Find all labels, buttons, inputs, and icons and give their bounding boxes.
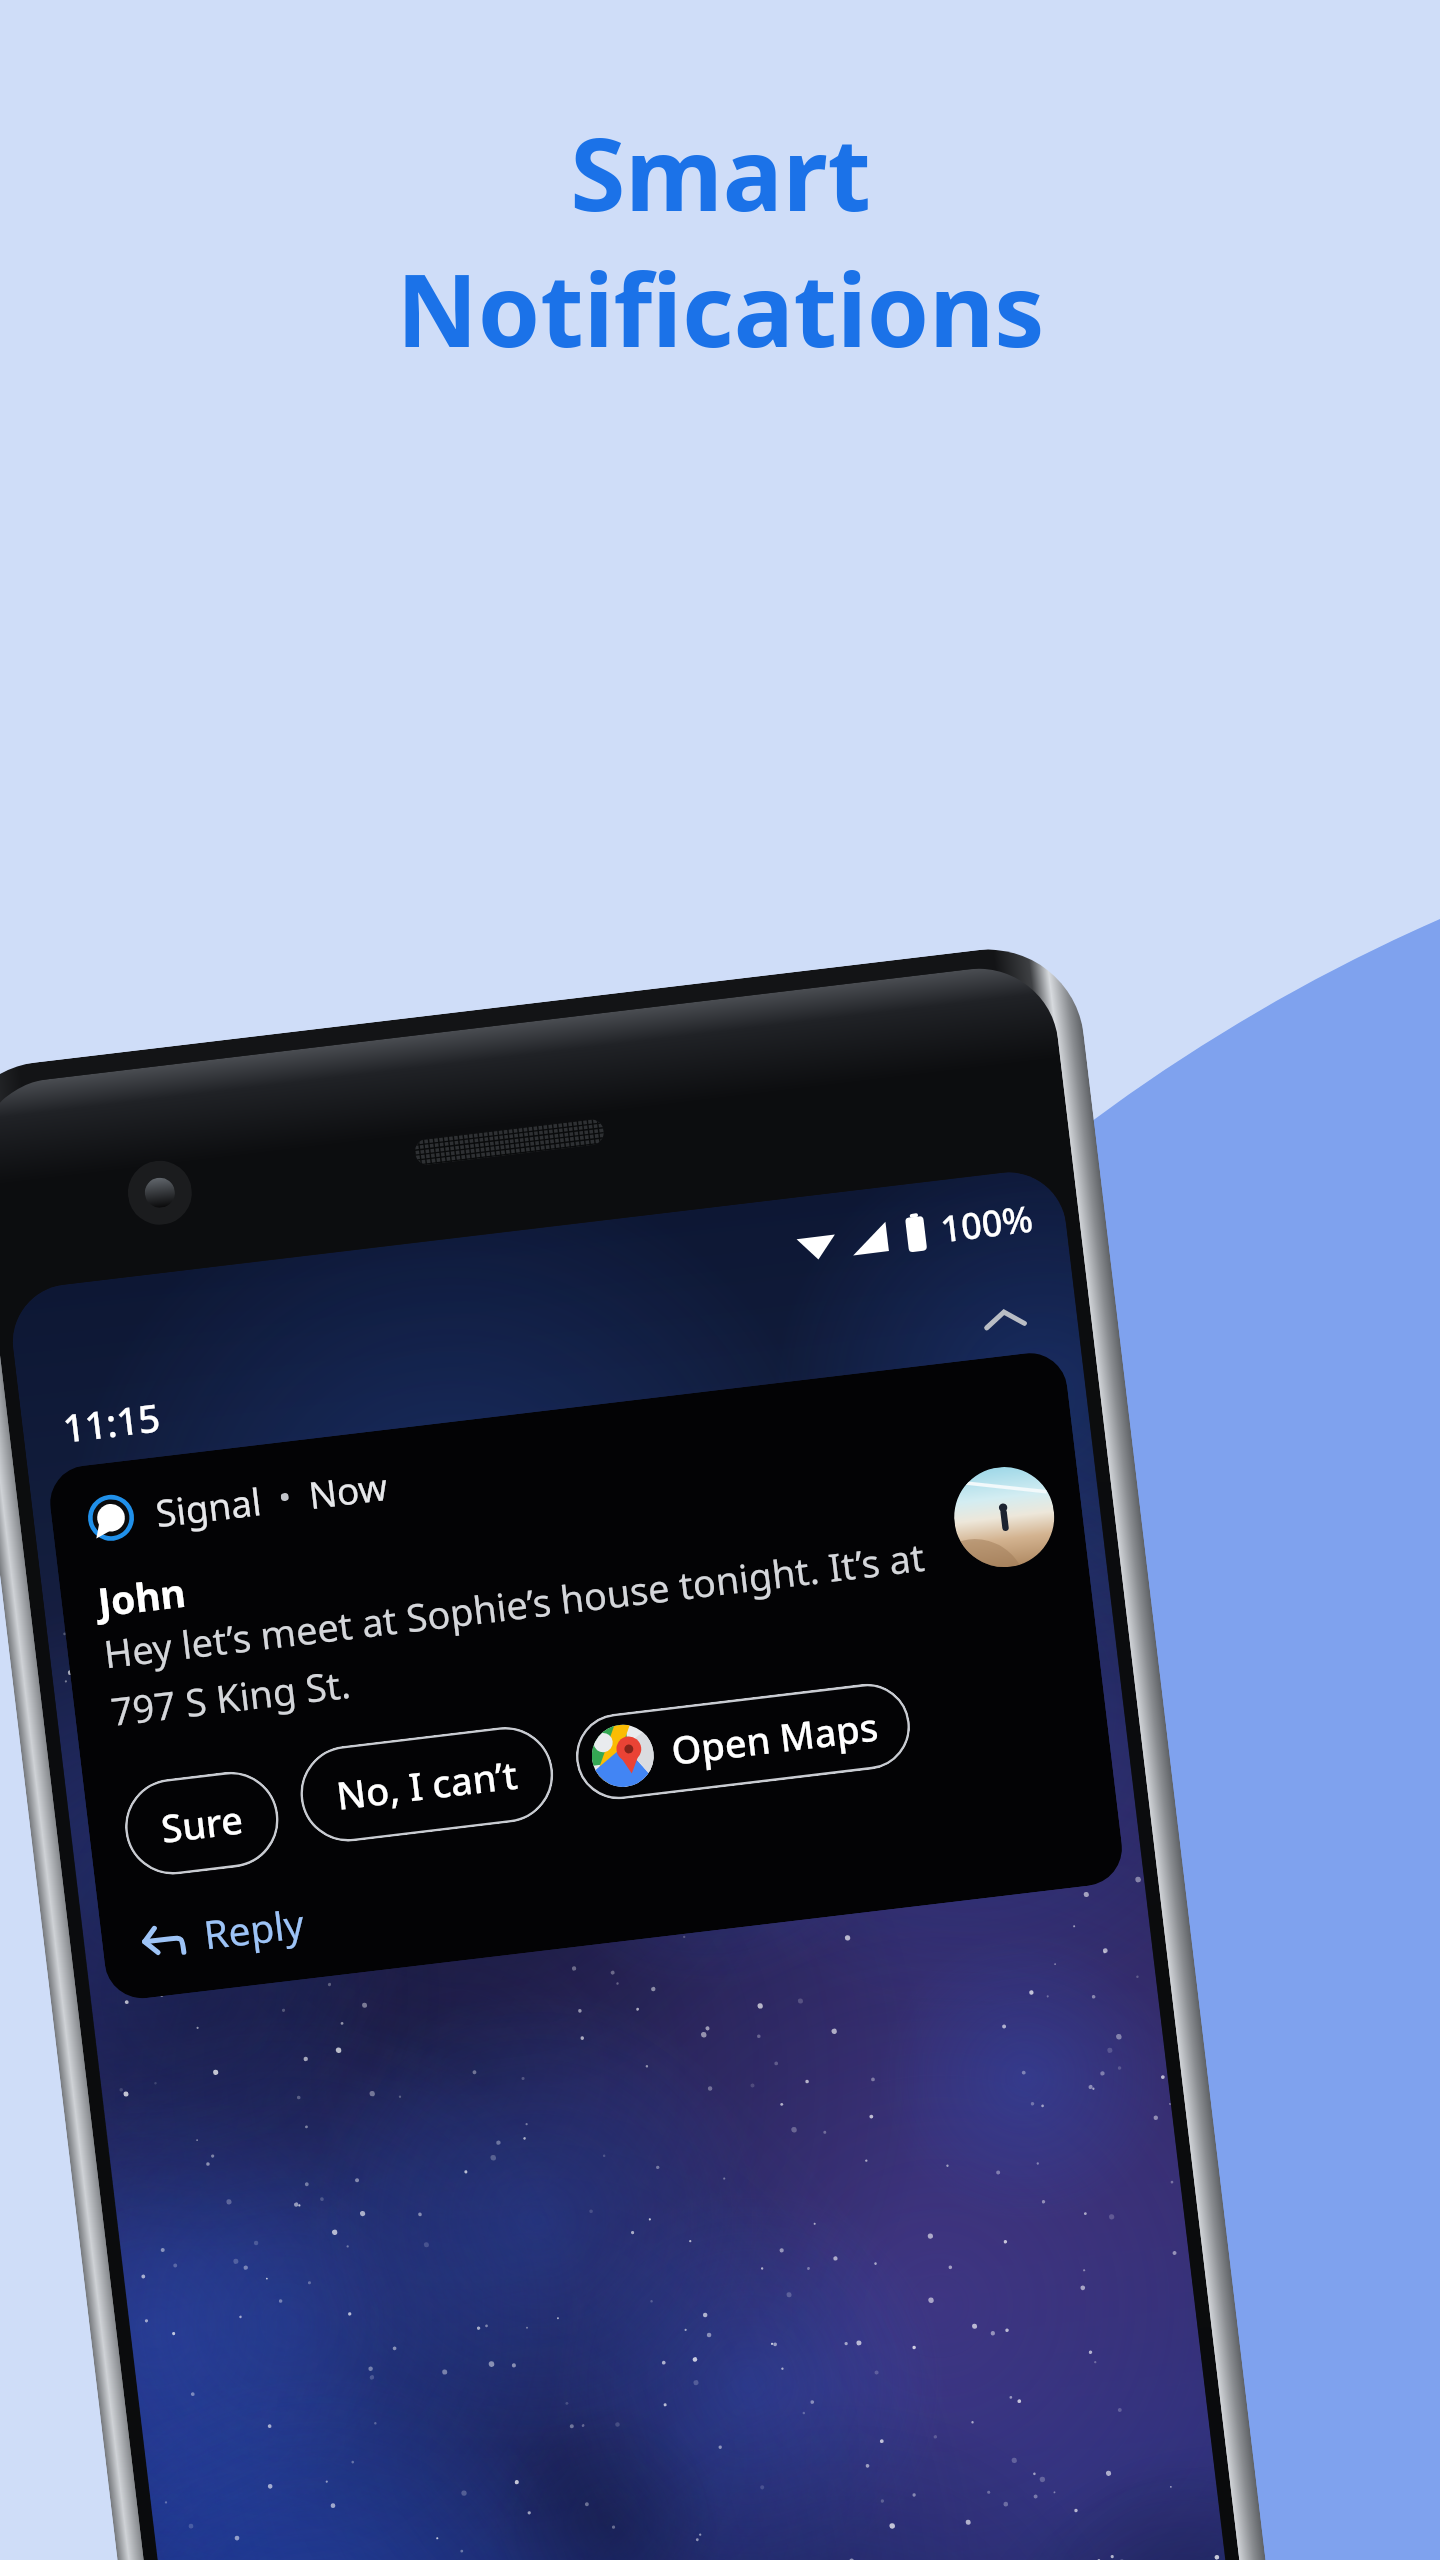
button[interactable]: Sure — [120, 1766, 284, 1880]
staticText: Notifications — [396, 240, 1045, 376]
staticText: No, I can’t — [333, 1748, 520, 1821]
button[interactable]: Reply — [135, 1889, 312, 1974]
button[interactable]: Open Maps — [571, 1679, 915, 1804]
staticText: 11:15 — [60, 1390, 163, 1454]
staticText: John — [95, 1565, 188, 1628]
staticText: Reply — [201, 1896, 307, 1960]
button[interactable]: No, I can’t — [295, 1722, 559, 1847]
staticText: 100% — [938, 1194, 1036, 1253]
staticText: Hey let’s meet at Sophie’s house tonight… — [101, 1528, 954, 1737]
staticText: Smart — [570, 104, 871, 240]
button[interactable]: Signal — [46, 1349, 1126, 2002]
button[interactable]: Collapse notification — [974, 1288, 1036, 1351]
staticText: Signal — [153, 1475, 264, 1537]
staticText: Now — [306, 1460, 390, 1519]
staticText: Open Maps — [668, 1700, 881, 1776]
staticText: Sure — [158, 1792, 246, 1854]
